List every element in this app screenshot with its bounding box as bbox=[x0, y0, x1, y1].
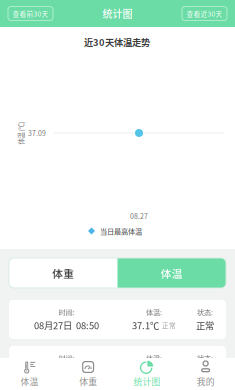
staticText: 近30天体温走势 bbox=[84, 35, 150, 49]
staticText: 体温: bbox=[146, 307, 162, 317]
staticText: 体温 (℃) bbox=[9, 128, 32, 138]
staticText: 体温: bbox=[146, 353, 162, 363]
staticText: 状态: bbox=[197, 353, 213, 363]
button[interactable]: 我的 bbox=[176, 358, 235, 390]
staticText: 正常 bbox=[162, 320, 176, 330]
staticText: 正常 bbox=[196, 318, 214, 332]
button[interactable]: 统计图 bbox=[117, 358, 176, 390]
staticText: 时间: bbox=[58, 353, 74, 363]
staticText: 统计图 bbox=[102, 6, 132, 21]
button[interactable]: 查看前30天 bbox=[8, 6, 53, 20]
staticText: 体温 bbox=[161, 265, 183, 281]
button[interactable]: 查看近30天 bbox=[182, 6, 227, 20]
button[interactable]: 时间: bbox=[9, 300, 226, 339]
button[interactable]: 体重 bbox=[59, 358, 118, 390]
staticText: 08.27 bbox=[130, 211, 148, 221]
staticText: 统计图 bbox=[133, 375, 160, 388]
staticText: 36.8℃ bbox=[132, 364, 159, 378]
staticText: 查看近30天 bbox=[186, 9, 222, 18]
staticText: 体重 bbox=[52, 265, 74, 281]
button[interactable]: 体重 bbox=[9, 258, 117, 288]
staticText: 当日最高体温 bbox=[100, 226, 142, 236]
staticText: 正常 bbox=[196, 364, 214, 378]
staticText: 我的 bbox=[197, 375, 215, 388]
staticText: 37.1℃ bbox=[132, 318, 159, 332]
staticText: 状态: bbox=[197, 307, 213, 317]
button[interactable]: 时间: bbox=[9, 346, 226, 385]
staticText: 37.09 bbox=[28, 128, 46, 138]
staticText: 查看前30天 bbox=[12, 9, 48, 18]
button[interactable]: 体温 bbox=[0, 358, 59, 390]
staticText: 体重 bbox=[79, 375, 97, 388]
staticText: 时间: bbox=[58, 307, 74, 317]
staticText: 08月26日 09:12 bbox=[34, 364, 99, 378]
staticText: 体温 bbox=[20, 375, 38, 388]
button[interactable]: 体温 bbox=[117, 258, 226, 288]
staticText: 08月27日 08:50 bbox=[34, 318, 99, 332]
